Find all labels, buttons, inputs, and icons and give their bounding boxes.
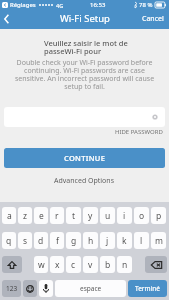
button[interactable]: p (151, 207, 166, 224)
staticText: t (72, 210, 76, 222)
button[interactable]: Emoji keyboard (23, 280, 37, 297)
button[interactable]: c (66, 256, 81, 273)
button[interactable]: v (83, 256, 98, 273)
staticText: HIDE PASSWORD (115, 128, 163, 136)
button[interactable]: 123 (2, 280, 21, 297)
staticText: g (71, 235, 77, 247)
staticText: e (39, 210, 44, 222)
button[interactable]: l (134, 232, 149, 249)
staticText: i (123, 210, 126, 222)
button[interactable]: k (117, 232, 132, 249)
button[interactable]: q (2, 232, 16, 249)
button[interactable]: Backspace (145, 256, 167, 273)
staticText: o (139, 210, 145, 222)
button[interactable]: f (50, 232, 64, 249)
staticText: Réglages (10, 1, 36, 9)
button[interactable]: Dictation (39, 280, 53, 297)
staticText: 16:53 (90, 1, 106, 9)
button[interactable]: t (66, 207, 81, 224)
button[interactable]: Shift (2, 256, 22, 273)
button[interactable]: Back (0, 12, 13, 25)
staticText: Double check your Wi-Fi password before … (9, 58, 160, 91)
staticText: k (122, 235, 127, 247)
button[interactable]: g (66, 232, 81, 249)
staticText: p (156, 210, 162, 222)
staticText: Wi-Fi Setup (60, 12, 110, 25)
button[interactable]: z (18, 207, 32, 224)
staticText: m (155, 235, 163, 247)
button[interactable]: s (18, 232, 32, 249)
button[interactable]: Clear text (150, 112, 160, 122)
button[interactable]: x (50, 256, 64, 273)
button[interactable]: Terminé (128, 280, 167, 297)
button[interactable]: j (100, 232, 115, 249)
staticText: espace (80, 284, 102, 293)
staticText: CONTINUE (64, 153, 106, 163)
staticText: w (38, 259, 45, 271)
staticText: l (140, 235, 143, 247)
staticText: Terminé (135, 284, 160, 293)
button[interactable]: HIDE PASSWORD (113, 126, 165, 138)
staticText: n (122, 259, 128, 271)
button[interactable]: w (34, 256, 48, 273)
button[interactable]: Cancel (140, 14, 166, 24)
staticText: f (56, 235, 59, 247)
button[interactable]: Advanced Options (52, 174, 117, 188)
button[interactable]: CONTINUE (4, 148, 165, 168)
button[interactable]: y (83, 207, 98, 224)
staticText: x (55, 259, 60, 271)
button[interactable]: n (117, 256, 132, 273)
button[interactable]: b (100, 256, 115, 273)
staticText: r (55, 210, 59, 222)
staticText: Cancel (142, 14, 164, 24)
staticText: q (6, 235, 12, 247)
button[interactable]: o (134, 207, 149, 224)
button[interactable]: m (151, 232, 166, 249)
button[interactable]: e (34, 207, 48, 224)
staticText: u (105, 210, 111, 222)
button[interactable]: u (100, 207, 115, 224)
button[interactable]: espace (55, 280, 126, 297)
staticText: 78 % (139, 1, 153, 9)
staticText: 4G (56, 2, 64, 9)
staticText: s (23, 235, 28, 247)
staticText: d (38, 235, 44, 247)
staticText: c (71, 259, 76, 271)
staticText: v (88, 259, 93, 271)
button[interactable]: d (34, 232, 48, 249)
staticText: 123 (6, 284, 18, 293)
staticText: h (88, 235, 94, 247)
staticText: z (23, 210, 27, 222)
button[interactable]: Clear text (4, 107, 165, 127)
button[interactable]: h (83, 232, 98, 249)
staticText: j (106, 235, 109, 247)
staticText: a (7, 210, 12, 222)
button[interactable]: r (50, 207, 64, 224)
staticText: Veuillez saisir le mot de passeWi-Fi pou… (44, 38, 128, 56)
staticText: y (88, 210, 93, 222)
staticText: b (105, 259, 111, 271)
button[interactable]: i (117, 207, 132, 224)
button[interactable]: a (2, 207, 16, 224)
